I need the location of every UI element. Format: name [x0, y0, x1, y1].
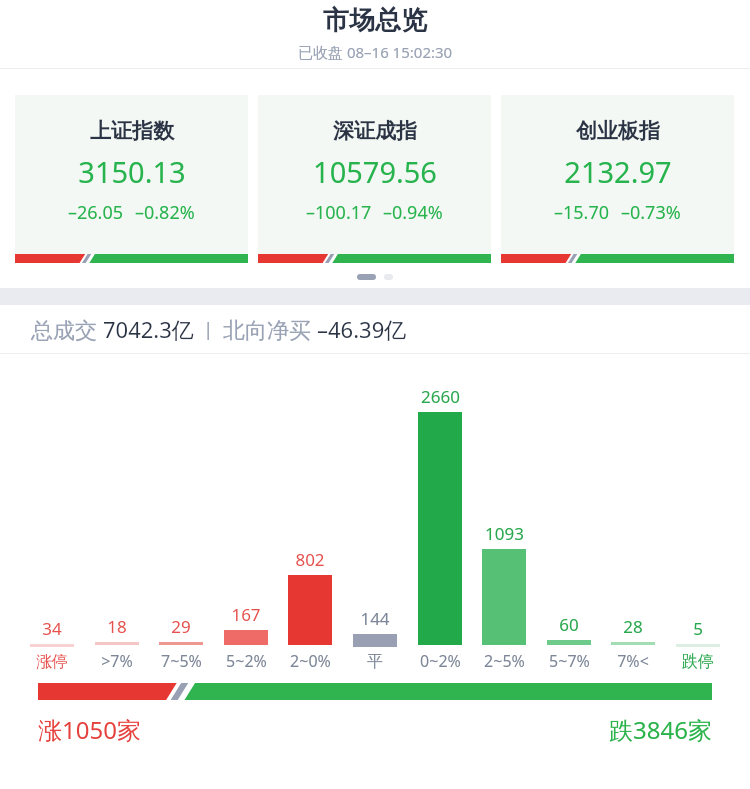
staticText: 5~2% [226, 650, 267, 672]
staticText: 7~5% [161, 650, 202, 672]
button[interactable]: 167 [216, 603, 276, 672]
staticText: 5 [693, 617, 703, 640]
staticText: 2660 [421, 385, 460, 408]
staticText: 7042.3亿 [103, 314, 194, 344]
staticText: 跌3846家 [609, 713, 712, 746]
button[interactable]: 上证指数 [15, 95, 248, 263]
staticText: 60 [559, 613, 579, 636]
button[interactable]: 28 [603, 615, 663, 672]
staticText: 144 [360, 607, 390, 630]
staticText: 已收盘 08–16 15:02:30 [298, 42, 453, 62]
button[interactable]: 18 [87, 615, 147, 672]
staticText: 2~5% [484, 650, 525, 672]
button[interactable]: 创业板指 [501, 95, 734, 263]
button[interactable]: 802 [280, 548, 340, 672]
button[interactable]: 1093 [474, 522, 534, 672]
staticText: 3150.13 [78, 152, 186, 191]
staticText: –0.82% [135, 200, 195, 225]
button[interactable]: 144 [345, 607, 405, 672]
staticText: –0.73% [621, 200, 681, 225]
staticText: 5~7% [549, 650, 590, 672]
staticText: 34 [42, 617, 62, 640]
button[interactable]: 5 [668, 617, 728, 672]
staticText: 创业板指 [576, 118, 660, 144]
staticText: –0.94% [383, 200, 443, 225]
staticText: >7% [101, 650, 133, 672]
staticText: 28 [623, 615, 643, 638]
staticText: 总成交 [31, 314, 103, 344]
staticText: 167 [231, 603, 261, 626]
staticText: 市场总览 [323, 4, 427, 37]
staticText: 涨停 [36, 652, 68, 672]
staticText: 802 [295, 548, 325, 571]
staticText: 涨1050家 [38, 713, 141, 746]
staticText: 2~0% [290, 650, 331, 672]
button[interactable]: 涨1050家 [38, 683, 712, 746]
staticText: 北向净买 [223, 314, 317, 344]
staticText: 2132.97 [564, 152, 672, 191]
staticText: 深证成指 [333, 118, 417, 144]
button[interactable]: 29 [151, 615, 211, 672]
button[interactable]: 总成交 [0, 305, 750, 353]
staticText: –46.39亿 [317, 314, 407, 344]
staticText: 平 [367, 652, 383, 672]
staticText: –15.70 [554, 200, 610, 225]
staticText: 0~2% [420, 650, 461, 672]
staticText: 18 [107, 615, 127, 638]
staticText: 1093 [485, 522, 524, 545]
staticText: | [194, 317, 223, 342]
staticText: 上证指数 [90, 118, 174, 144]
staticText: 29 [171, 615, 191, 638]
button[interactable]: 34 [22, 617, 82, 672]
button[interactable]: 2660 [410, 385, 470, 672]
button[interactable]: 60 [539, 613, 599, 672]
staticText: 10579.56 [313, 152, 437, 191]
staticText: 跌停 [682, 652, 714, 672]
staticText: –100.17 [306, 200, 372, 225]
staticText: –26.05 [68, 200, 124, 225]
staticText: 7%< [617, 650, 649, 672]
button[interactable]: 深证成指 [258, 95, 491, 263]
